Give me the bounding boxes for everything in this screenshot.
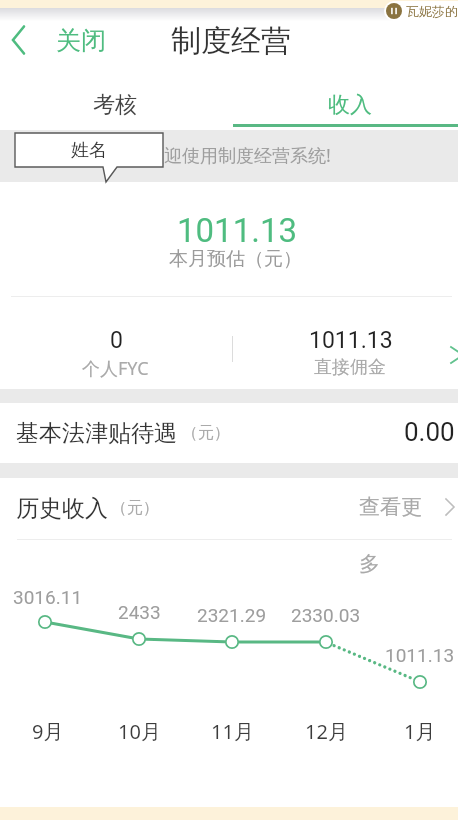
staticText: 1月 <box>404 718 436 745</box>
button[interactable]: 收入 <box>235 83 458 127</box>
staticText: 12月 <box>305 718 348 745</box>
staticText: 3016.11 <box>13 586 83 608</box>
button[interactable]: 基本法津贴待遇 <box>0 403 458 463</box>
staticText: 关闭 <box>56 25 106 56</box>
staticText: 收入 <box>328 91 372 119</box>
staticText: 2433 <box>118 601 161 623</box>
staticText: 历史收入 <box>16 494 108 523</box>
button[interactable]: 0 <box>0 300 458 389</box>
staticText: 1011.13 <box>177 211 297 250</box>
staticText: 瓦妮莎的 <box>406 3 458 19</box>
button[interactable]: 考核 <box>0 83 229 127</box>
staticText: （元） <box>111 498 159 518</box>
button[interactable]: 关闭 <box>4 23 116 57</box>
staticText: 2330.03 <box>291 604 361 626</box>
staticText: 姓名 <box>71 139 107 162</box>
staticText: 11月 <box>211 718 254 745</box>
staticText: 2321.29 <box>197 604 267 626</box>
staticText: 1011.13 <box>385 644 455 666</box>
staticText: 直接佣金 <box>314 356 386 379</box>
staticText: 个人FYC <box>82 356 149 381</box>
button[interactable]: Now playing, pause <box>384 1 458 21</box>
button[interactable]: 历史收入 <box>0 478 458 578</box>
staticText: 本月预估（元） <box>169 247 302 271</box>
staticText: 考核 <box>93 91 137 119</box>
staticText: 1011.13 <box>309 327 393 354</box>
staticText: 0.00 <box>404 417 455 447</box>
staticText: 制度经营 <box>171 22 291 60</box>
staticText: 查看更 <box>359 494 422 520</box>
staticText: 9月 <box>32 718 64 745</box>
staticText: 基本法津贴待遇 <box>16 419 177 448</box>
staticText: 0 <box>110 327 123 354</box>
staticText: （元） <box>182 423 230 443</box>
staticText: 多 <box>359 551 380 577</box>
staticText: 10月 <box>118 718 161 745</box>
staticText: 欢迎使用制度经营系统! <box>146 143 331 168</box>
